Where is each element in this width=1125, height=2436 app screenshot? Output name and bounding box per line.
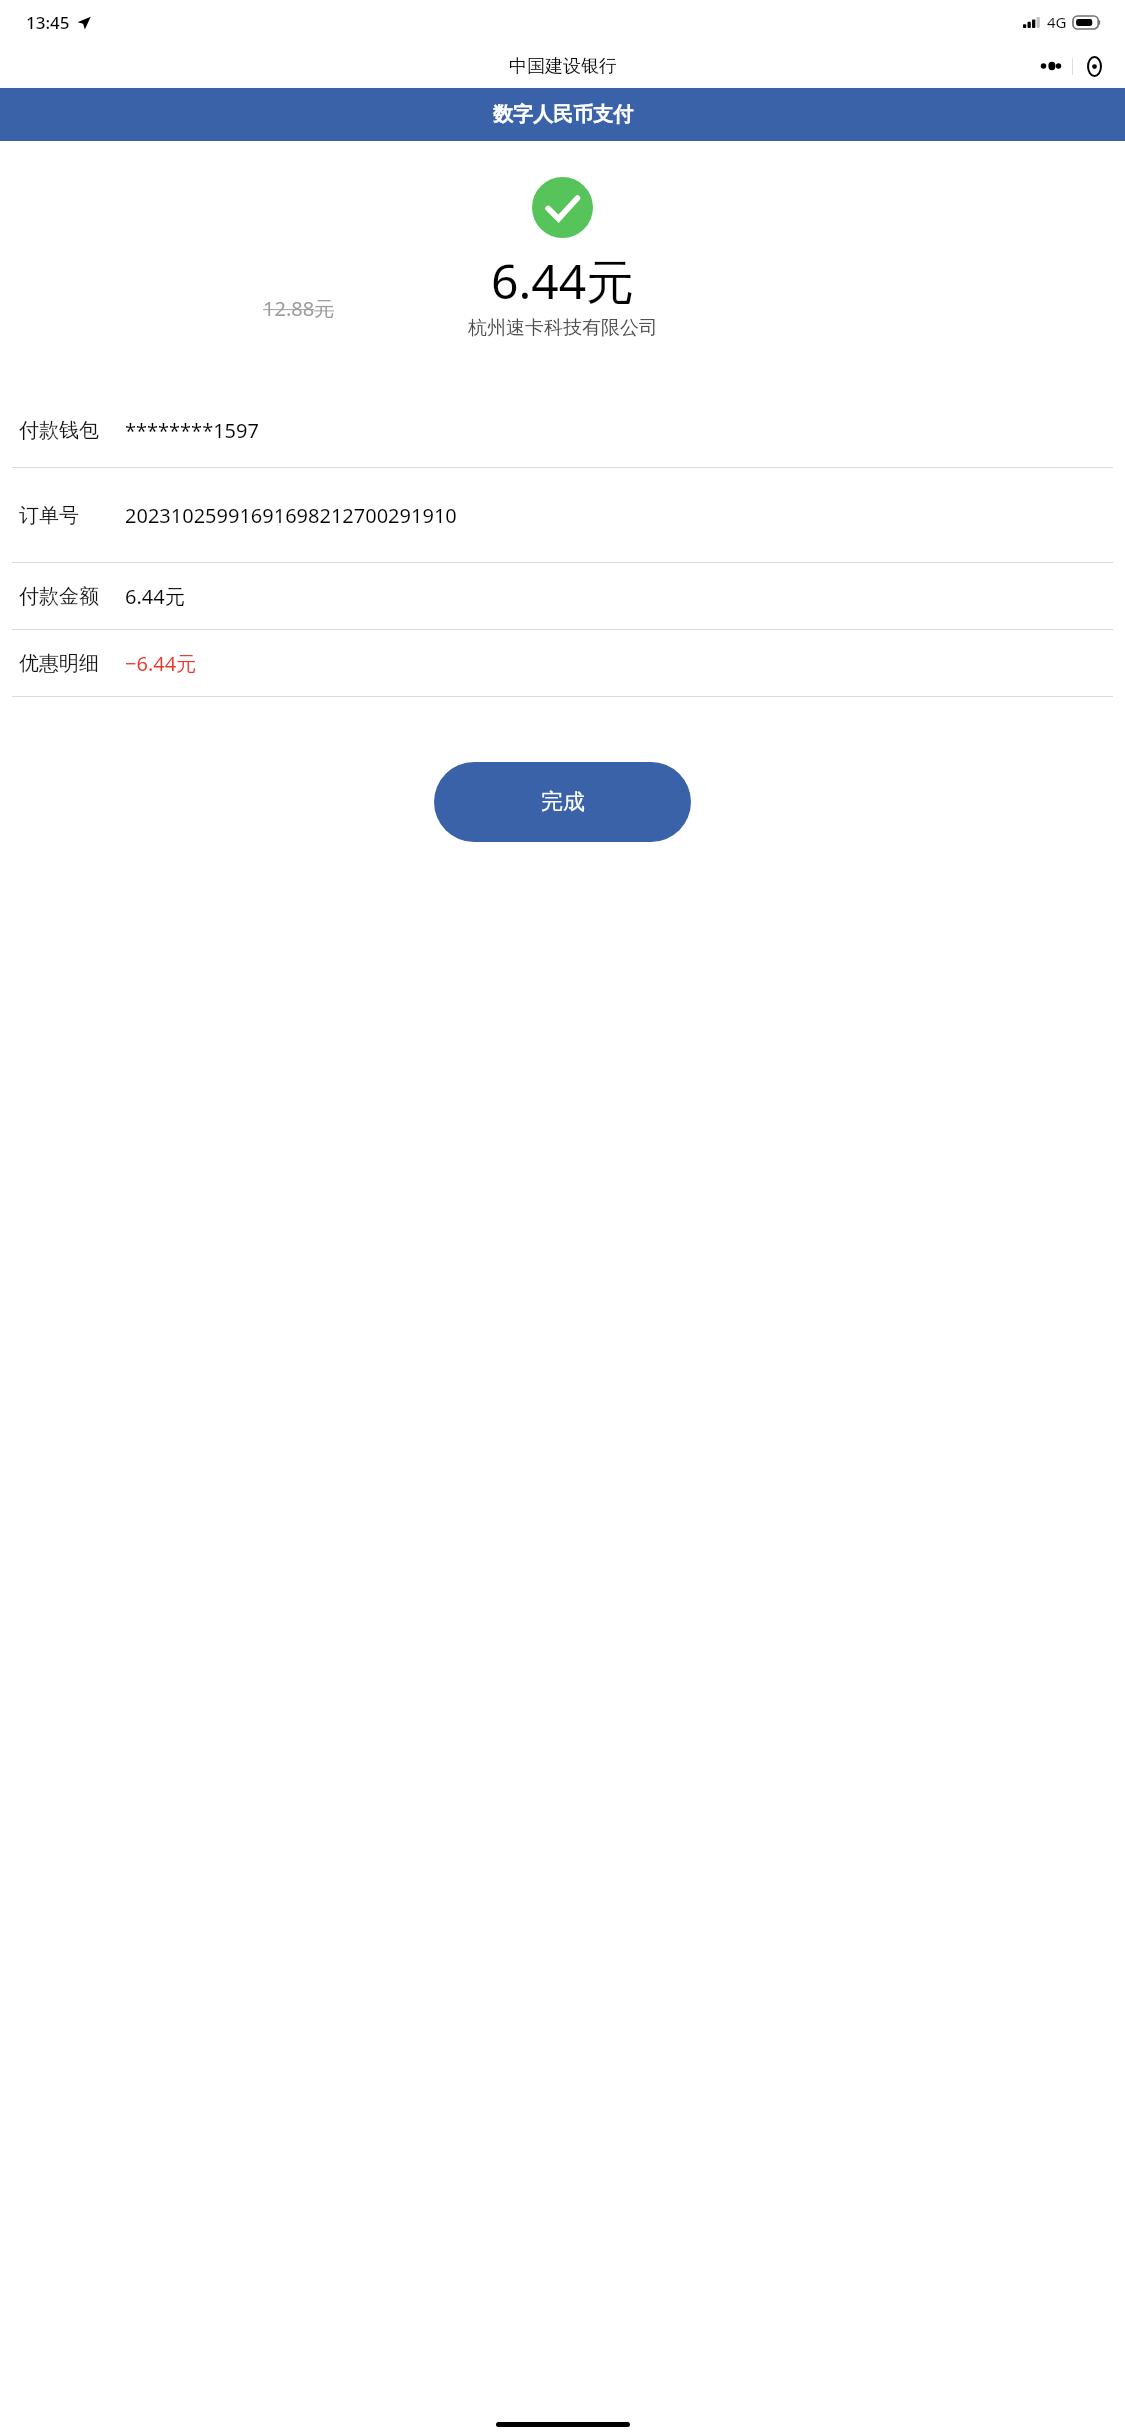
staticText: 优惠明细 [19,651,109,676]
button[interactable]: 付款金额 [12,563,1113,629]
staticText: 完成 [541,788,585,816]
button[interactable]: 付款钱包 [12,393,1113,467]
button[interactable]: 订单号 [12,468,1113,562]
staticText: 4G [1047,12,1067,32]
staticText: 付款钱包 [19,418,109,443]
staticText: −6.44元 [125,650,197,677]
button[interactable]: 完成 [434,762,691,842]
staticText: 12.88元 [263,295,335,322]
staticText: 20231025991691698212700291910 [125,502,457,529]
staticText: 6.44元 [491,248,635,314]
staticText: 付款金额 [19,584,109,609]
button[interactable]: More [1029,50,1072,82]
staticText: 订单号 [19,503,109,528]
staticText: 中国建设银行 [509,55,617,78]
staticText: 杭州速卡科技有限公司 [468,316,658,340]
button[interactable]: Close [1073,50,1116,82]
staticText: ********1597 [125,417,259,444]
staticText: 6.44元 [125,583,185,610]
staticText: 数字人民币支付 [493,102,633,127]
staticText: 13:45 [26,11,70,34]
button[interactable]: 优惠明细 [12,630,1113,696]
